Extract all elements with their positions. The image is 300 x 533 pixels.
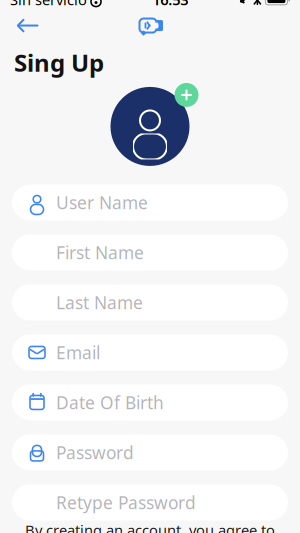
staticText: 16:53 bbox=[152, 0, 188, 9]
staticText: Retype Password bbox=[56, 491, 196, 514]
staticText: Password bbox=[56, 441, 134, 464]
button[interactable]: User Name bbox=[12, 184, 288, 220]
staticText: User Name bbox=[56, 191, 148, 214]
staticText: By creating an account, you agree to Cha… bbox=[25, 520, 275, 533]
staticText: Sin servicio bbox=[10, 0, 87, 9]
button[interactable]: By creating an account, you agree to Cha… bbox=[14, 520, 286, 533]
button[interactable]: Email bbox=[12, 334, 288, 370]
button[interactable]: Back bbox=[6, 9, 50, 43]
staticText: First Name bbox=[56, 241, 144, 264]
button[interactable]: Last Name bbox=[12, 284, 288, 320]
button[interactable]: Video chat bbox=[128, 9, 172, 43]
button[interactable]: Password bbox=[12, 434, 288, 470]
staticText: Sing Up bbox=[14, 47, 104, 78]
staticText: Email bbox=[56, 341, 100, 364]
button[interactable]: Add profile photo bbox=[102, 84, 197, 168]
button[interactable]: Retype Password bbox=[12, 484, 288, 520]
staticText: Last Name bbox=[56, 291, 143, 314]
staticText: Date Of Birth bbox=[56, 391, 164, 414]
button[interactable]: Date Of Birth bbox=[12, 384, 288, 420]
button[interactable]: First Name bbox=[12, 234, 288, 270]
